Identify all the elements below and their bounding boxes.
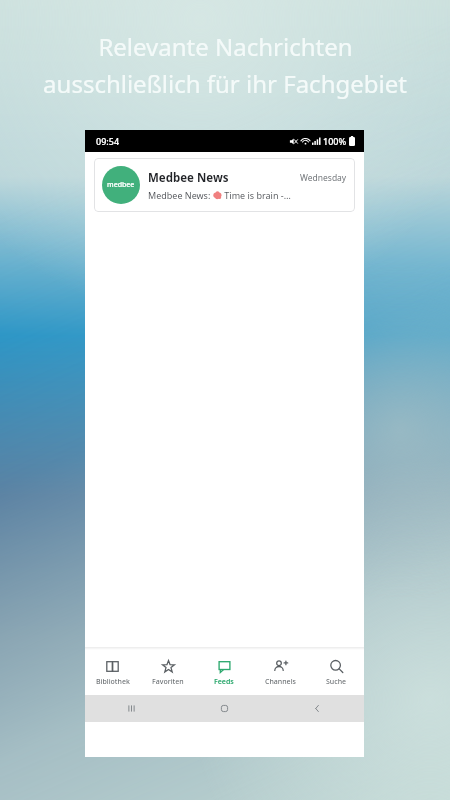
button[interactable]: medbee <box>94 158 355 212</box>
staticText: Time is brain -… <box>222 189 291 201</box>
button[interactable]: Home <box>178 695 271 722</box>
staticText: Wednesday <box>300 172 347 184</box>
staticText: Channels <box>265 677 296 687</box>
button[interactable]: Back <box>271 695 364 722</box>
button[interactable]: Favoriten <box>140 654 196 692</box>
staticText: 100% <box>323 135 347 147</box>
staticText: Medbee News <box>148 170 300 186</box>
staticText: Feeds <box>214 677 234 687</box>
button[interactable]: Recent apps <box>85 695 178 722</box>
button[interactable]: Channels <box>252 654 308 692</box>
button[interactable]: Feeds <box>196 654 252 692</box>
staticText: medbee <box>107 180 135 190</box>
staticText: Medbee News: <box>148 189 213 201</box>
staticText: Suche <box>326 677 347 687</box>
staticText: ausschließlich für ihr Fachgebiet <box>43 67 407 100</box>
staticText: Relevante Nachrichten <box>98 30 353 63</box>
button[interactable]: Suche <box>308 654 364 692</box>
button[interactable]: Bibliothek <box>85 654 140 692</box>
staticText: 09:54 <box>96 135 120 147</box>
staticText: Bibliothek <box>96 677 130 687</box>
staticText: Favoriten <box>152 677 184 687</box>
